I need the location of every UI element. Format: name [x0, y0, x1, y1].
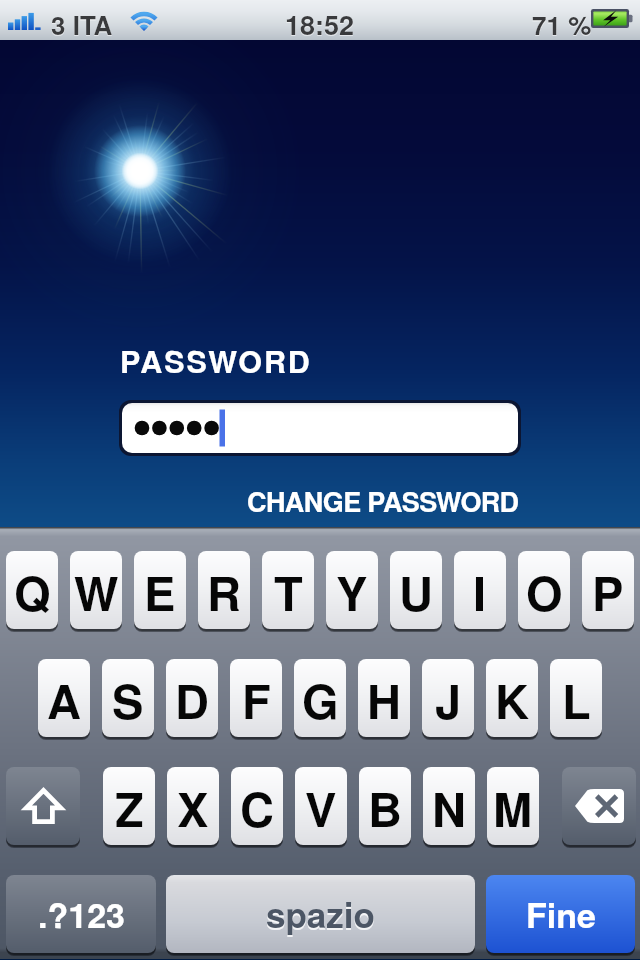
staticText: H	[367, 666, 401, 733]
button[interactable]: O	[518, 551, 570, 629]
button[interactable]: H	[358, 659, 410, 737]
button[interactable]: .?123	[6, 875, 156, 953]
button[interactable]: G	[294, 659, 346, 737]
staticText: D	[175, 666, 209, 733]
button[interactable]: B	[359, 767, 411, 845]
staticText: 18:52	[285, 6, 355, 45]
staticText: W	[74, 558, 119, 625]
button[interactable]: Backspace	[562, 767, 636, 845]
staticText: 18:52	[285, 5, 355, 44]
staticText: I	[473, 558, 487, 625]
button[interactable]: Fine	[486, 875, 635, 953]
staticText: S	[112, 666, 144, 733]
button[interactable]: X	[167, 767, 219, 845]
button[interactable]: R	[198, 551, 250, 629]
button[interactable]: T	[262, 551, 314, 629]
staticText: 71 %	[532, 6, 592, 43]
button[interactable]: J	[422, 659, 474, 737]
button[interactable]: C	[231, 767, 283, 845]
staticText: V	[305, 774, 337, 841]
staticText: F	[242, 666, 271, 733]
button[interactable]: M	[487, 767, 539, 845]
button[interactable]: Y	[326, 551, 378, 629]
staticText: T	[274, 558, 303, 625]
staticText: B	[368, 774, 402, 841]
staticText: A	[47, 666, 81, 733]
staticText: PASSWORD	[120, 339, 312, 383]
staticText: U	[399, 558, 433, 625]
staticText: spazio	[266, 889, 375, 939]
button[interactable]: L	[550, 659, 602, 737]
staticText: R	[207, 558, 241, 625]
staticText: Y	[336, 558, 368, 625]
staticText: C	[240, 774, 274, 841]
button[interactable]: V	[295, 767, 347, 845]
staticText: Q	[14, 558, 51, 625]
button[interactable]: U	[390, 551, 442, 629]
staticText: M	[493, 774, 533, 841]
staticText: N	[432, 774, 466, 841]
staticText: 71 %	[532, 7, 592, 44]
button[interactable]: K	[486, 659, 538, 737]
staticText: E	[144, 558, 176, 625]
button[interactable]: N	[423, 767, 475, 845]
button[interactable]: CHANGE PASSWORD	[247, 482, 519, 521]
staticText: Z	[115, 774, 144, 841]
staticText: L	[562, 666, 591, 733]
button[interactable]: Q	[6, 551, 58, 629]
staticText: K	[495, 666, 529, 733]
staticText: X	[177, 774, 209, 841]
button[interactable]: spazio	[166, 875, 475, 953]
staticText: .?123	[38, 890, 125, 939]
button[interactable]: Z	[103, 767, 155, 845]
staticText: spazio	[266, 891, 375, 941]
staticText: J	[435, 666, 462, 733]
button[interactable]: I	[454, 551, 506, 629]
button[interactable]: S	[102, 659, 154, 737]
button[interactable]: W	[70, 551, 122, 629]
staticText: Fine	[526, 890, 596, 939]
button[interactable]: A	[38, 659, 90, 737]
staticText: P	[592, 558, 624, 625]
staticText: G	[302, 666, 339, 733]
button[interactable]: Shift	[6, 767, 80, 845]
staticText: 3 ITA	[51, 6, 113, 43]
button[interactable]	[122, 403, 518, 453]
staticText: 3 ITA	[51, 7, 113, 44]
button[interactable]: F	[230, 659, 282, 737]
staticText: O	[526, 558, 563, 625]
button[interactable]: P	[582, 551, 634, 629]
button[interactable]: D	[166, 659, 218, 737]
button[interactable]: E	[134, 551, 186, 629]
